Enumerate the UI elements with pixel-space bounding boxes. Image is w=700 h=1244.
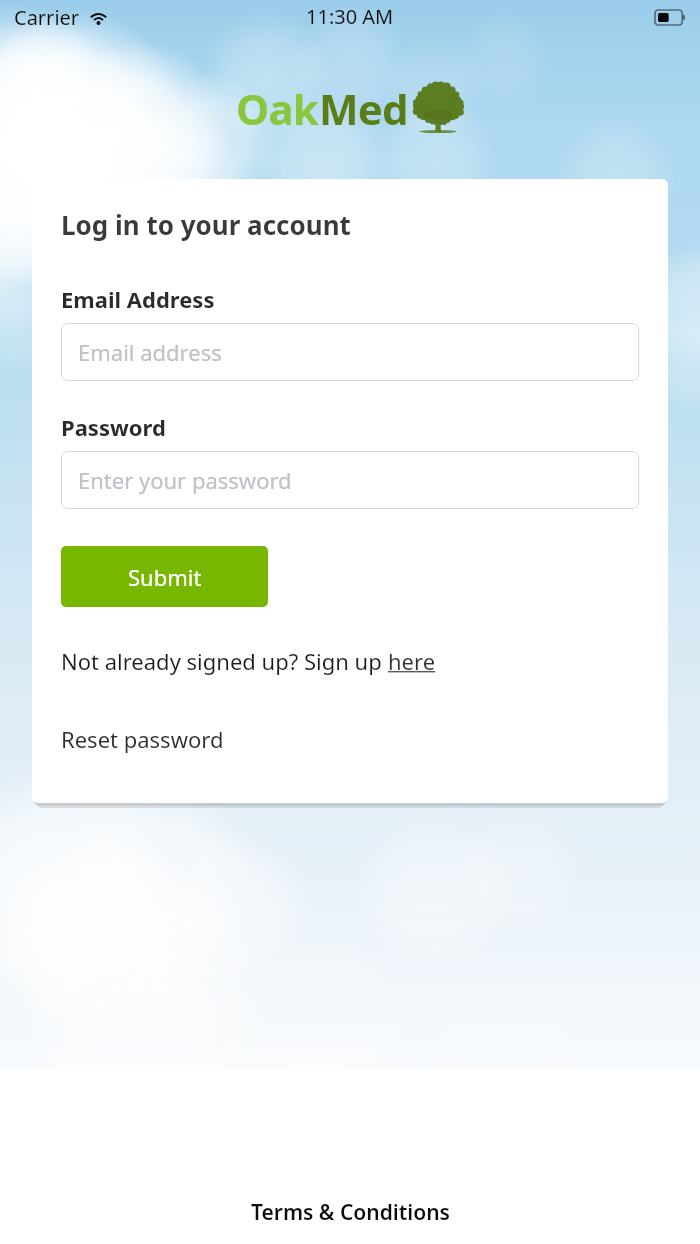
staticText: Carrier — [14, 4, 80, 31]
button[interactable]: Reset password — [61, 724, 224, 754]
button[interactable]: Enter your password — [61, 451, 639, 509]
staticText: Email Address — [61, 284, 215, 314]
button[interactable]: here — [388, 646, 436, 676]
staticText: Oak — [236, 80, 319, 137]
button[interactable]: Terms & Conditions — [251, 1198, 450, 1227]
staticText: Not already signed up? Sign up — [61, 646, 388, 676]
staticText: Password — [61, 412, 166, 442]
staticText: Email address — [78, 337, 222, 367]
button[interactable]: Email address — [61, 323, 639, 381]
staticText: 11:30 AM — [306, 3, 394, 30]
button[interactable]: Submit — [61, 546, 268, 607]
staticText: Log in to your account — [61, 207, 351, 242]
staticText: Med — [319, 80, 408, 137]
staticText: Submit — [128, 562, 202, 592]
staticText: Enter your password — [78, 465, 292, 495]
